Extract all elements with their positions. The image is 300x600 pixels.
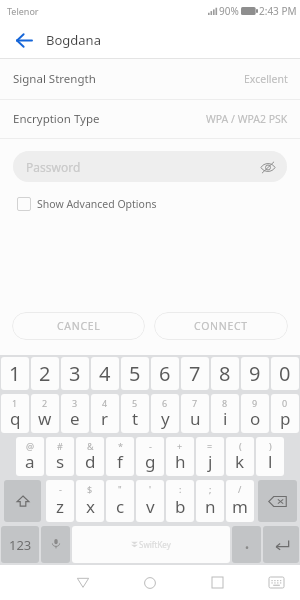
button[interactable]: & (76, 437, 104, 476)
button[interactable]: 6 (151, 394, 179, 433)
staticText: j (208, 450, 213, 473)
button[interactable]: " (106, 480, 134, 522)
button[interactable]: 7 (181, 357, 209, 390)
staticText: q (10, 407, 21, 430)
staticText: ' (149, 483, 152, 495)
staticText: y (161, 407, 170, 430)
button[interactable]: 6 (151, 357, 179, 390)
staticText: $ (87, 483, 93, 495)
button[interactable]: Period (232, 526, 261, 563)
button[interactable]: @ (16, 437, 44, 476)
button[interactable]: 123 (1, 526, 39, 563)
button[interactable]: 1 (1, 357, 29, 390)
button[interactable]: CANCEL (12, 312, 145, 340)
staticText: 5 (129, 360, 141, 387)
button[interactable]: CONNECT (154, 312, 288, 340)
staticText: CONNECT (194, 319, 248, 333)
button[interactable]: Show password (258, 157, 278, 177)
staticText: ; (209, 483, 212, 495)
staticText: c (116, 495, 125, 518)
staticText: 0 (279, 360, 291, 387)
button[interactable]: Back (8, 24, 40, 56)
staticText: z (56, 495, 64, 518)
button[interactable]: Recents (200, 565, 234, 600)
staticText: Show Advanced Options (37, 197, 157, 211)
staticText: Bogdana (46, 31, 101, 49)
button[interactable]: - (136, 437, 164, 476)
staticText: g (145, 450, 156, 473)
staticText: 90% (219, 4, 239, 18)
staticText: p (280, 407, 291, 430)
button[interactable]: $ (76, 480, 104, 522)
staticText: f (117, 450, 123, 473)
button[interactable]: Voice input (41, 526, 70, 563)
staticText: ( (239, 440, 242, 452)
staticText: 2 (39, 360, 51, 387)
staticText: 6 (162, 397, 168, 409)
button[interactable]: # (46, 437, 74, 476)
button[interactable]: ' (136, 480, 164, 522)
button[interactable]: 5 (121, 357, 149, 390)
button[interactable]: 4 (91, 394, 119, 433)
button[interactable]: 4 (91, 357, 119, 390)
button[interactable]: = (196, 437, 224, 476)
button[interactable]: 0 (271, 357, 299, 390)
button[interactable]: 7 (181, 394, 209, 433)
button[interactable]: 2 (31, 394, 59, 433)
staticText: u (190, 407, 201, 430)
button[interactable]: ( (226, 437, 254, 476)
button[interactable]: ; (196, 480, 224, 522)
button[interactable]: Home (133, 565, 167, 600)
staticText: 9 (249, 360, 261, 387)
button[interactable]: 9 (241, 394, 269, 433)
button[interactable]: Back (66, 565, 100, 600)
staticText: 7 (192, 397, 198, 409)
button[interactable]: ) (256, 437, 284, 476)
staticText: @ (26, 440, 35, 452)
button[interactable]: Signal Strength (0, 59, 300, 99)
button[interactable]: 3 (61, 357, 89, 390)
staticText: " (118, 483, 122, 495)
button[interactable]: 5 (121, 394, 149, 433)
button[interactable]: Space (72, 526, 230, 563)
button[interactable]: Show Advanced Options (0, 197, 300, 211)
button[interactable]: Enter (263, 526, 299, 563)
staticText: Signal Strength (13, 71, 96, 87)
button[interactable]: * (106, 437, 134, 476)
button[interactable]: Keyboard (259, 565, 293, 600)
staticText: a (25, 450, 35, 473)
button[interactable]: Shift (4, 480, 41, 522)
button[interactable]: 0 (271, 394, 299, 433)
staticText: / (238, 483, 242, 495)
button[interactable]: Password (13, 151, 287, 182)
staticText: ) (269, 440, 272, 452)
staticText: Password (26, 159, 81, 175)
button[interactable]: 1 (1, 394, 29, 433)
staticText: 5 (132, 397, 138, 409)
button[interactable]: / (226, 480, 254, 522)
button[interactable]: - (46, 480, 74, 522)
button[interactable]: Encryption Type (0, 100, 300, 138)
staticText: CANCEL (57, 319, 101, 333)
staticText: 4 (99, 360, 111, 387)
button[interactable]: 3 (61, 394, 89, 433)
staticText: s (56, 450, 65, 473)
staticText: 1 (12, 397, 18, 409)
staticText: - (149, 440, 152, 452)
staticText: + (177, 440, 183, 452)
button[interactable]: 8 (211, 394, 239, 433)
staticText: h (175, 450, 186, 473)
button[interactable]: Backspace (258, 480, 297, 522)
staticText: 7 (189, 360, 201, 387)
button[interactable]: 8 (211, 357, 239, 390)
staticText: - (59, 483, 62, 495)
button[interactable]: 9 (241, 357, 269, 390)
button[interactable]: : (166, 480, 194, 522)
staticText: l (268, 450, 273, 473)
staticText: Encryption Type (13, 111, 100, 127)
staticText: e (70, 407, 80, 430)
button[interactable]: + (166, 437, 194, 476)
button[interactable]: 2 (31, 357, 59, 390)
staticText: 8 (222, 397, 228, 409)
staticText: 4 (102, 397, 108, 409)
